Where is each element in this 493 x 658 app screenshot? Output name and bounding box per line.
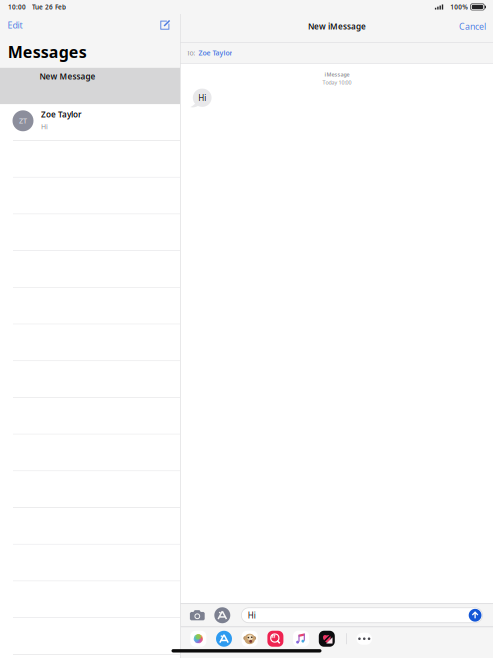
staticText: 100% (450, 3, 468, 11)
button[interactable]: Images (267, 631, 283, 647)
button[interactable]: Music (293, 631, 309, 647)
staticText: Edit (7, 19, 22, 31)
button[interactable]: New Message (0, 68, 180, 104)
staticText: Cancel (459, 20, 486, 32)
staticText: 10:00 (8, 3, 26, 11)
button[interactable]: Apps (214, 605, 230, 626)
staticText: ZT (19, 116, 27, 126)
button[interactable]: ZT (0, 104, 180, 141)
button[interactable]: Digital Touch (319, 631, 335, 647)
staticText: New iMessage (308, 21, 366, 32)
staticText: Hi (198, 92, 206, 103)
staticText: iMessage (324, 71, 349, 78)
staticText: Tue 26 Feb (32, 3, 66, 11)
button[interactable]: More (356, 631, 372, 647)
staticText: Hi (248, 610, 256, 621)
staticText: Zoe Taylor (41, 109, 82, 120)
button[interactable]: Memoji (242, 631, 258, 647)
staticText: Zoe Taylor (198, 48, 232, 57)
staticText: Messages (8, 41, 87, 63)
button[interactable]: App Store (216, 631, 232, 647)
button[interactable]: Cancel (452, 14, 493, 38)
staticText: Hi (41, 122, 48, 131)
staticText: To: (186, 48, 195, 57)
button[interactable]: Camera (189, 605, 205, 626)
staticText: Today 10:00 (322, 79, 351, 86)
button[interactable]: New message (155, 14, 175, 36)
button[interactable]: Photos (190, 631, 206, 647)
staticText: New Message (39, 71, 95, 82)
button[interactable]: Send (469, 609, 481, 622)
button[interactable]: Edit (0, 14, 30, 36)
